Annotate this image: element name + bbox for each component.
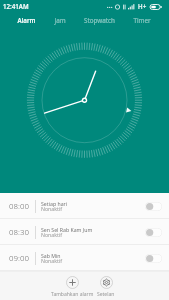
button[interactable]: Tambahkan alarm <box>46 276 98 298</box>
button[interactable]: Alarm <box>8 12 45 29</box>
staticText: 09:00 <box>9 253 29 264</box>
staticText: Setiap hari Nonaktif <box>41 200 68 212</box>
button[interactable]: 08:30 <box>0 219 169 245</box>
button[interactable]: Toggle alarm <box>145 254 162 263</box>
staticText: Stopwatch <box>84 16 115 25</box>
staticText: Setelan <box>97 291 115 298</box>
staticText: Sen Sel Rab Kam Jum Nonaktif <box>41 226 93 238</box>
staticText: Alarm <box>17 16 36 25</box>
button[interactable]: 09:00 <box>0 245 169 271</box>
staticText: Jam <box>54 16 66 25</box>
button[interactable]: Stopwatch <box>75 12 124 29</box>
button[interactable]: 08:00 <box>0 193 169 219</box>
button[interactable]: Setelan <box>80 276 132 298</box>
staticText: 12:41AM <box>3 2 29 10</box>
staticText: 08:00 <box>9 201 29 212</box>
staticText: H+ <box>138 2 147 11</box>
staticText: Sab Min Nonaktif <box>41 252 62 264</box>
staticText: Timer <box>133 16 151 25</box>
button[interactable]: Timer <box>124 12 160 29</box>
button[interactable]: Toggle alarm <box>145 202 162 211</box>
staticText: Tambahkan alarm <box>51 291 94 298</box>
staticText: 08:30 <box>9 227 29 238</box>
button[interactable]: Jam <box>45 12 75 29</box>
button[interactable]: Toggle alarm <box>145 228 162 237</box>
